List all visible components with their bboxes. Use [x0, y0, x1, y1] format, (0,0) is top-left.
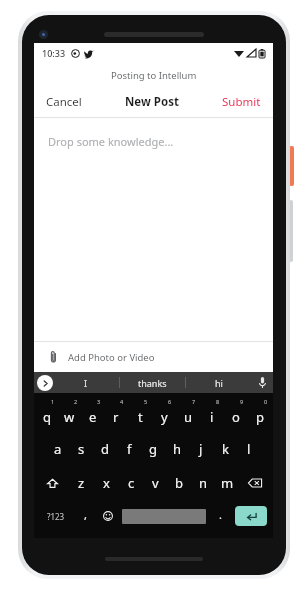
button[interactable]: 0 [248, 396, 272, 432]
staticText: 10:33 [42, 47, 66, 59]
button[interactable]: n [191, 466, 215, 500]
button[interactable]: k [213, 432, 237, 466]
staticText: d [101, 440, 109, 458]
staticText: r [113, 408, 119, 426]
staticText: 6 [168, 398, 172, 405]
staticText: h [173, 440, 182, 458]
button[interactable]: I [53, 372, 119, 393]
button[interactable]: . [209, 500, 232, 532]
button[interactable]: s [69, 432, 93, 466]
staticText: a [54, 440, 62, 458]
button[interactable]: Submit [220, 90, 263, 114]
staticText: I [84, 377, 88, 389]
staticText: w [64, 408, 75, 426]
staticText: thanks [138, 377, 167, 389]
staticText: e [89, 408, 97, 426]
staticText: g [149, 440, 157, 458]
staticText: Drop some knowledge... [48, 134, 174, 149]
button[interactable]: 2 [58, 396, 81, 432]
button[interactable]: 5 [128, 396, 152, 432]
button[interactable]: 8 [200, 396, 224, 432]
button[interactable]: Cancel [44, 90, 84, 114]
staticText: k [222, 440, 229, 458]
button[interactable]: thanks [120, 372, 185, 393]
staticText: v [152, 474, 159, 492]
button[interactable]: l [237, 432, 261, 466]
staticText: . [219, 507, 222, 522]
staticText: z [78, 474, 85, 492]
button[interactable]: ?123 [37, 500, 74, 532]
button[interactable]: Add Photo or Video [34, 342, 273, 372]
button[interactable]: Enter [235, 506, 267, 526]
button[interactable]: 7 [176, 396, 200, 432]
staticText: c [128, 474, 135, 492]
staticText: s [78, 440, 85, 458]
staticText: o [232, 408, 240, 426]
staticText: 5 [144, 398, 148, 405]
staticText: m [221, 474, 234, 492]
staticText: New Post [125, 94, 179, 110]
staticText: j [199, 440, 203, 458]
staticText: x [103, 474, 110, 492]
button[interactable]: Shift [36, 466, 69, 500]
button[interactable]: 6 [152, 396, 176, 432]
button[interactable]: Drop some knowledge... [34, 118, 273, 341]
staticText: n [199, 474, 208, 492]
button[interactable]: More suggestions [37, 375, 53, 391]
button[interactable]: c [119, 466, 143, 500]
staticText: 0 [264, 398, 268, 405]
staticText: 4 [120, 398, 124, 405]
staticText: , [84, 507, 87, 522]
button[interactable]: 3 [81, 396, 104, 432]
button[interactable]: Emoji [96, 500, 119, 532]
button[interactable]: f [117, 432, 141, 466]
button[interactable]: z [69, 466, 94, 500]
staticText: 1 [51, 398, 55, 405]
staticText: y [161, 408, 168, 426]
button[interactable]: 9 [224, 396, 248, 432]
button[interactable]: Backspace [239, 466, 271, 500]
staticText: Cancel [46, 94, 82, 110]
button[interactable]: x [94, 466, 119, 500]
staticText: u [184, 408, 193, 426]
button[interactable]: , [74, 500, 96, 532]
staticText: 7 [192, 398, 196, 405]
button[interactable]: j [189, 432, 213, 466]
button[interactable]: d [93, 432, 117, 466]
button[interactable]: 4 [104, 396, 128, 432]
button[interactable]: v [143, 466, 167, 500]
staticText: 3 [97, 398, 101, 405]
staticText: l [247, 440, 251, 458]
staticText: t [138, 408, 143, 426]
staticText: Submit [222, 94, 261, 110]
staticText: 8 [216, 398, 220, 405]
staticText: q [43, 408, 51, 426]
button[interactable]: b [167, 466, 191, 500]
other: Add Photo or Video [47, 351, 59, 363]
button[interactable]: g [141, 432, 165, 466]
staticText: 9 [240, 398, 244, 405]
staticText: 2 [74, 398, 78, 405]
staticText: Add Photo or Video [68, 351, 155, 364]
staticText: i [210, 408, 214, 426]
button[interactable]: Voice input [251, 372, 273, 393]
button[interactable]: h [165, 432, 189, 466]
button[interactable]: hi [186, 372, 251, 393]
staticText: f [127, 440, 132, 458]
staticText: ?123 [47, 511, 65, 522]
staticText: Posting to Intellum [111, 69, 197, 82]
staticText: b [175, 474, 183, 492]
staticText: p [256, 408, 264, 426]
staticText: hi [215, 377, 223, 389]
button[interactable]: a [46, 432, 69, 466]
button[interactable]: m [215, 466, 239, 500]
button[interactable]: 1 [35, 396, 58, 432]
